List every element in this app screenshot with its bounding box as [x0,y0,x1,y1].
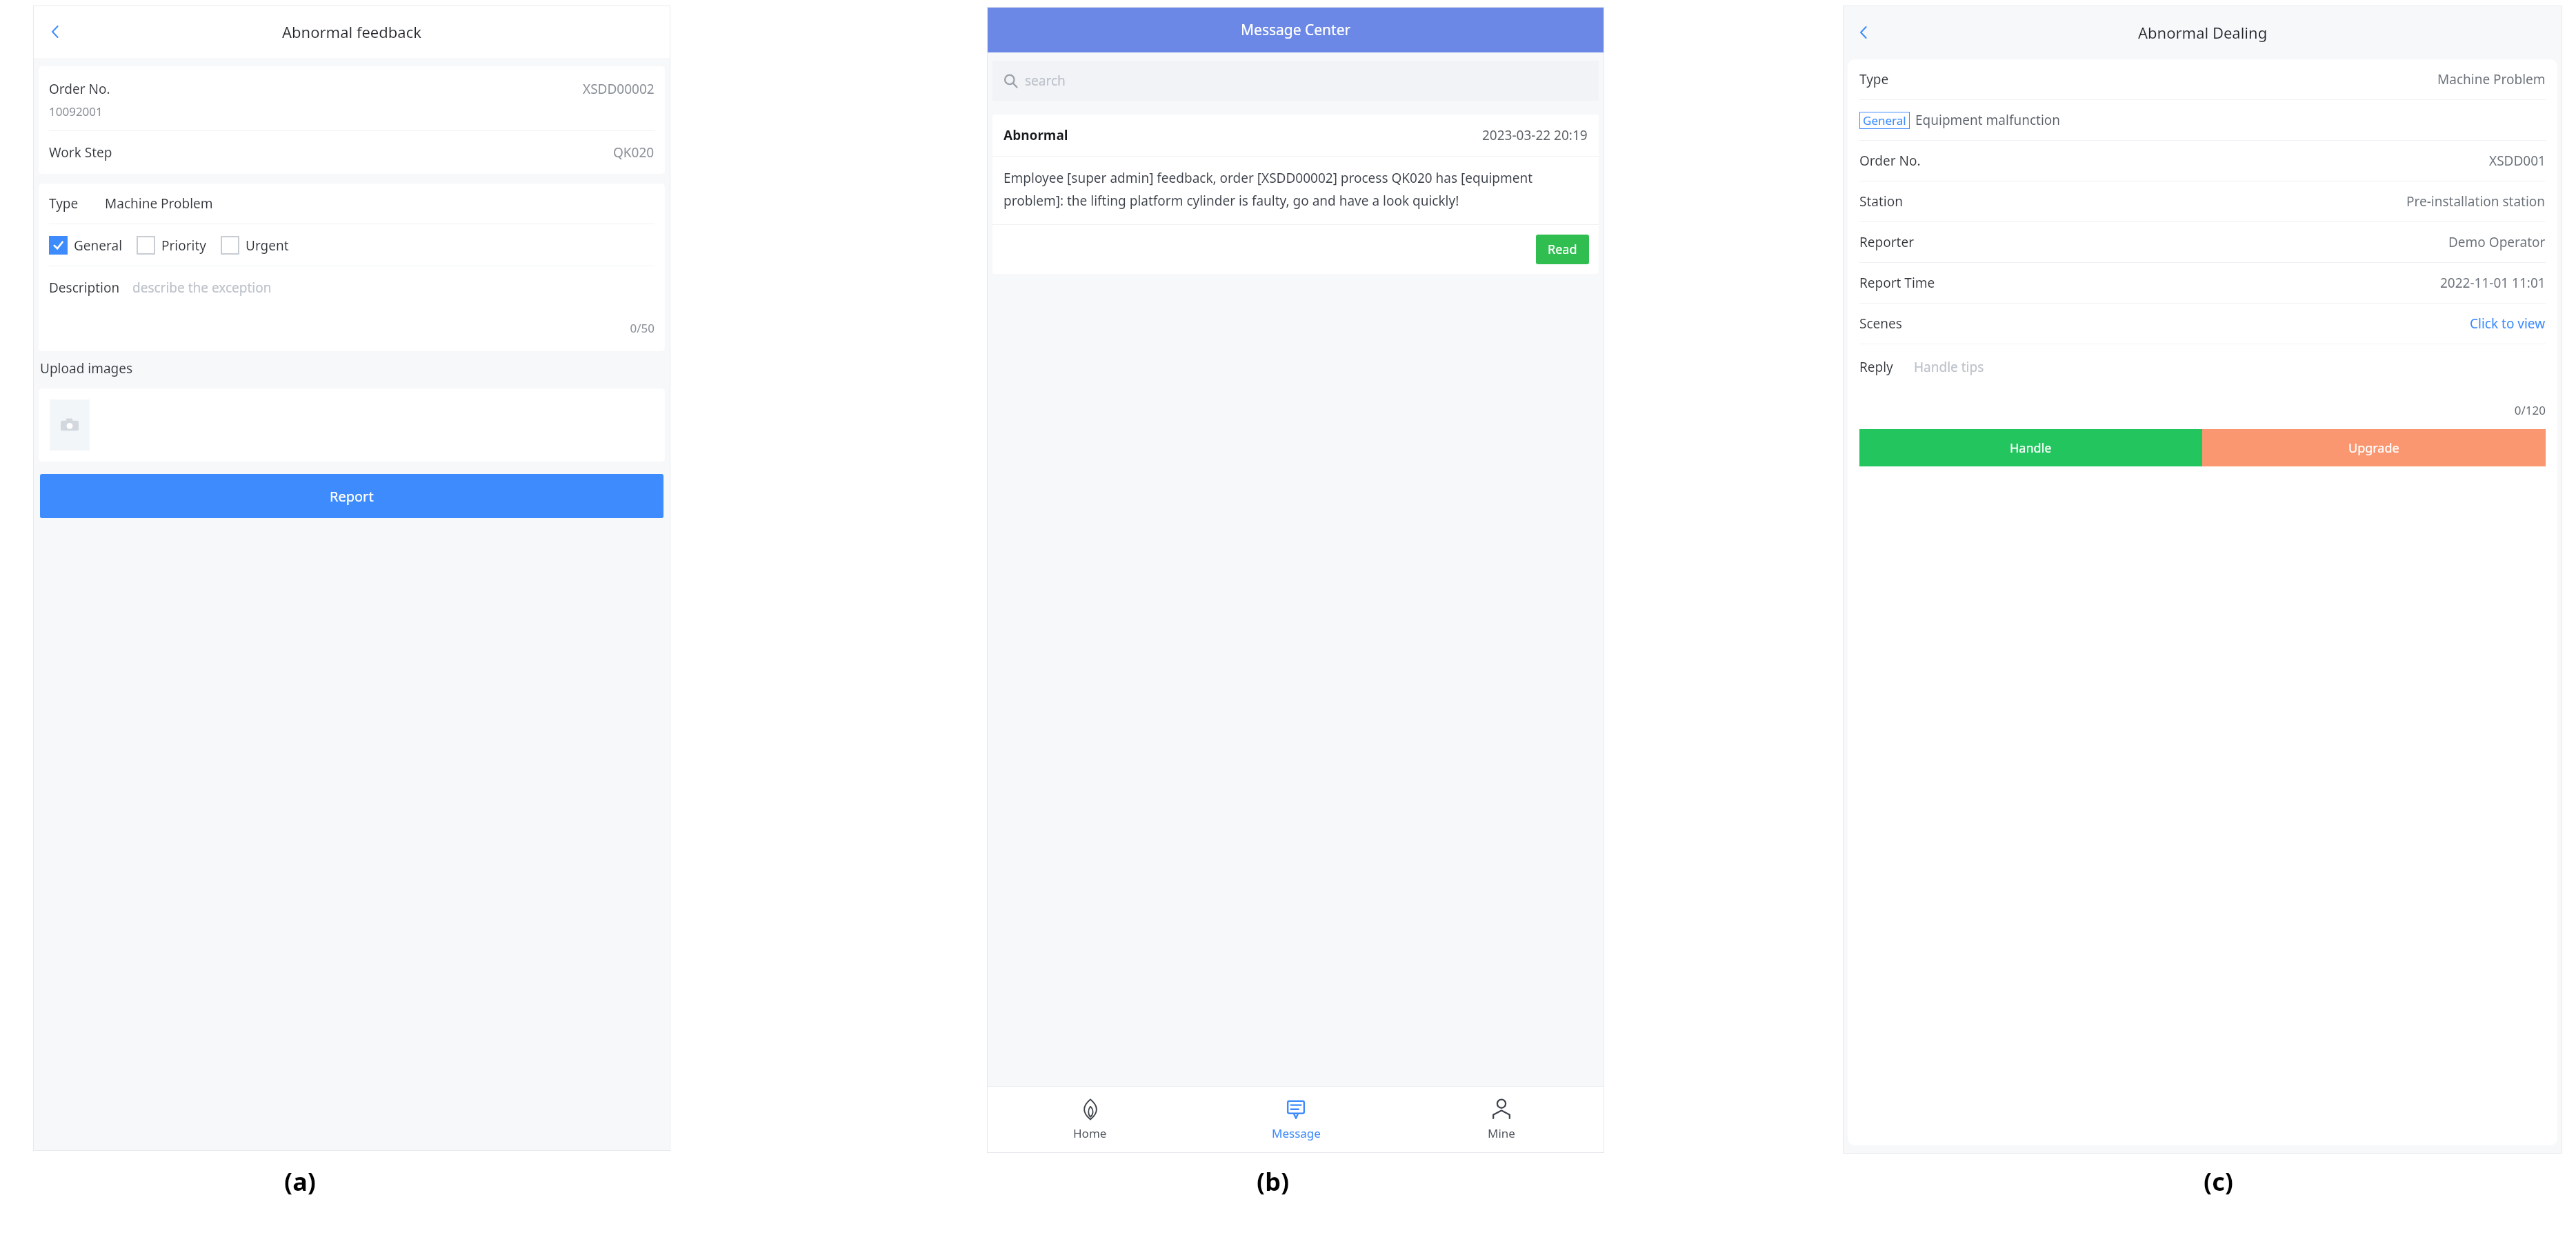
button[interactable]: Description [49,279,655,297]
staticText: Mine [1488,1125,1515,1141]
staticText: Handle [2010,439,2052,457]
staticText: Read [1548,241,1577,258]
staticText: Reply [1859,358,1893,376]
staticText: Upload images [40,359,133,377]
button[interactable]: General [49,233,123,257]
staticText: General [74,237,123,255]
button[interactable]: Abnormal [992,115,1599,274]
staticText: Message [1272,1125,1321,1141]
button[interactable]: Add photo [50,399,90,451]
staticText: Machine Problem [105,195,213,213]
staticText: Abnormal [1004,126,1068,144]
staticText: Home [1073,1125,1107,1141]
staticText: (c) [2204,1165,2233,1198]
staticText: General [1863,112,1906,128]
button[interactable]: Reply [1859,358,2546,376]
staticText: (b) [1257,1165,1290,1198]
staticText: 0/50 [49,320,655,336]
button[interactable]: Urgent [221,233,289,257]
staticText: Type [1859,70,1889,88]
button[interactable]: Type [49,184,655,224]
staticText: Upgrade [2348,439,2399,457]
button[interactable]: Upgrade [2202,429,2546,466]
staticText: Employee [super admin] feedback, order [… [1004,169,1588,209]
staticText: Abnormal feedback [282,21,421,42]
staticText: 2022-11-01 11:01 [2440,274,2546,292]
button[interactable]: Scenes [1859,304,2546,344]
staticText: Station [1859,192,1903,210]
staticText: (a) [284,1165,316,1198]
staticText: Reporter [1859,233,1914,251]
staticText: Order No. [49,80,110,98]
staticText: Handle tips [1914,358,1984,376]
button[interactable]: Priority [137,233,207,257]
staticText: Description [49,279,120,297]
button[interactable]: Message [1193,1087,1399,1153]
button[interactable]: Handle [1859,429,2202,466]
button[interactable]: search [1004,61,1599,101]
staticText: Work Step [49,144,112,161]
staticText: 0/120 [1859,402,2546,418]
button[interactable]: Home [987,1087,1193,1153]
staticText: Machine Problem [2437,70,2546,88]
staticText: Pre-installation station [2406,192,2546,210]
button[interactable]: Back [39,15,72,48]
staticText: Message Center [1241,20,1351,40]
staticText: search [1025,72,1066,90]
staticText: QK020 [613,144,655,161]
staticText: 2023-03-22 20:19 [1482,126,1588,144]
staticText: Report Time [1859,274,1935,292]
staticText: Order No. [1859,152,1921,170]
staticText: Scenes [1859,315,1902,333]
staticText: Priority [161,237,207,255]
staticText: Type [49,195,79,213]
staticText: XSDD001 [2489,152,2546,170]
staticText: 10092001 [49,103,103,119]
staticText: Abnormal Dealing [2138,22,2268,43]
staticText: describe the exception [132,279,272,297]
staticText: Urgent [246,237,289,255]
button[interactable]: Read [1536,235,1589,264]
staticText: Click to view [2470,315,2546,333]
button[interactable]: Report [40,474,663,518]
button[interactable]: Back [1847,16,1880,49]
staticText: XSDD00002 [583,80,655,98]
staticText: Equipment malfunction [1915,111,2061,129]
button[interactable]: Mine [1399,1087,1604,1153]
staticText: Report [330,487,374,506]
staticText: Demo Operator [2448,233,2546,251]
